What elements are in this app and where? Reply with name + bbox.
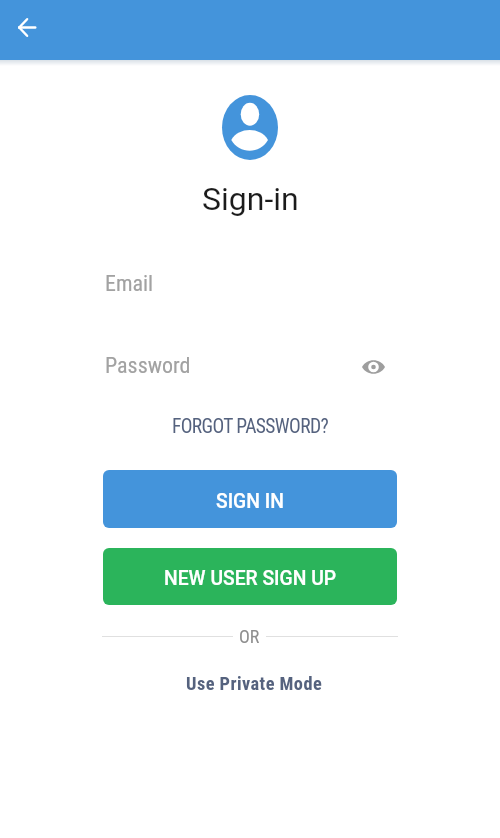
- staticText: Email: [105, 271, 154, 297]
- staticText: Use Private Mode: [186, 673, 323, 694]
- button[interactable]: SIGN IN: [103, 470, 397, 528]
- staticText: OR: [239, 626, 260, 647]
- button[interactable]: NEW USER SIGN UP: [103, 548, 397, 605]
- staticText: Password: [105, 353, 191, 379]
- button[interactable]: Use Private Mode: [176, 669, 333, 698]
- button[interactable]: Back: [3, 3, 51, 51]
- button[interactable]: Email: [103, 264, 397, 304]
- button[interactable]: FORGOT PASSWORD?: [162, 411, 339, 442]
- staticText: FORGOT PASSWORD?: [172, 415, 329, 438]
- staticText: Sign-in: [202, 180, 299, 218]
- staticText: NEW USER SIGN UP: [164, 567, 337, 590]
- button[interactable]: Password: [103, 346, 397, 386]
- button[interactable]: Show password: [355, 349, 391, 385]
- staticText: SIGN IN: [216, 490, 284, 513]
